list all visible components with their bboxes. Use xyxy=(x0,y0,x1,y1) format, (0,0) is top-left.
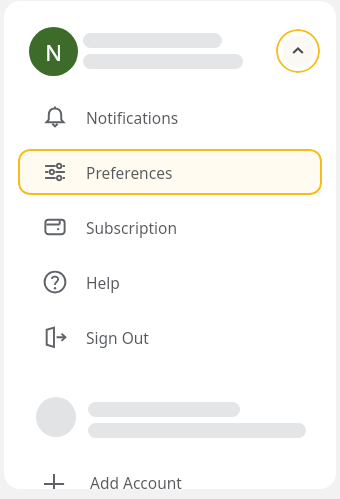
staticText: Preferences xyxy=(86,162,173,183)
staticText: N xyxy=(45,37,62,67)
button[interactable]: Collapse account list xyxy=(276,29,320,73)
button[interactable]: N xyxy=(4,1,336,89)
button[interactable]: Help xyxy=(18,259,322,305)
button[interactable]: Preferences xyxy=(18,149,322,195)
staticText: Help xyxy=(86,272,120,293)
staticText: Subscription xyxy=(86,217,177,238)
button[interactable]: Subscription xyxy=(18,204,322,250)
button[interactable]: Notifications xyxy=(18,94,322,140)
staticText: Notifications xyxy=(86,107,179,128)
button[interactable]: Sign Out xyxy=(18,314,322,360)
staticText: Add Account xyxy=(90,472,182,489)
staticText: Sign Out xyxy=(86,327,149,348)
button[interactable]: Add Account xyxy=(4,472,336,489)
button[interactable]: Other account xyxy=(4,386,336,446)
